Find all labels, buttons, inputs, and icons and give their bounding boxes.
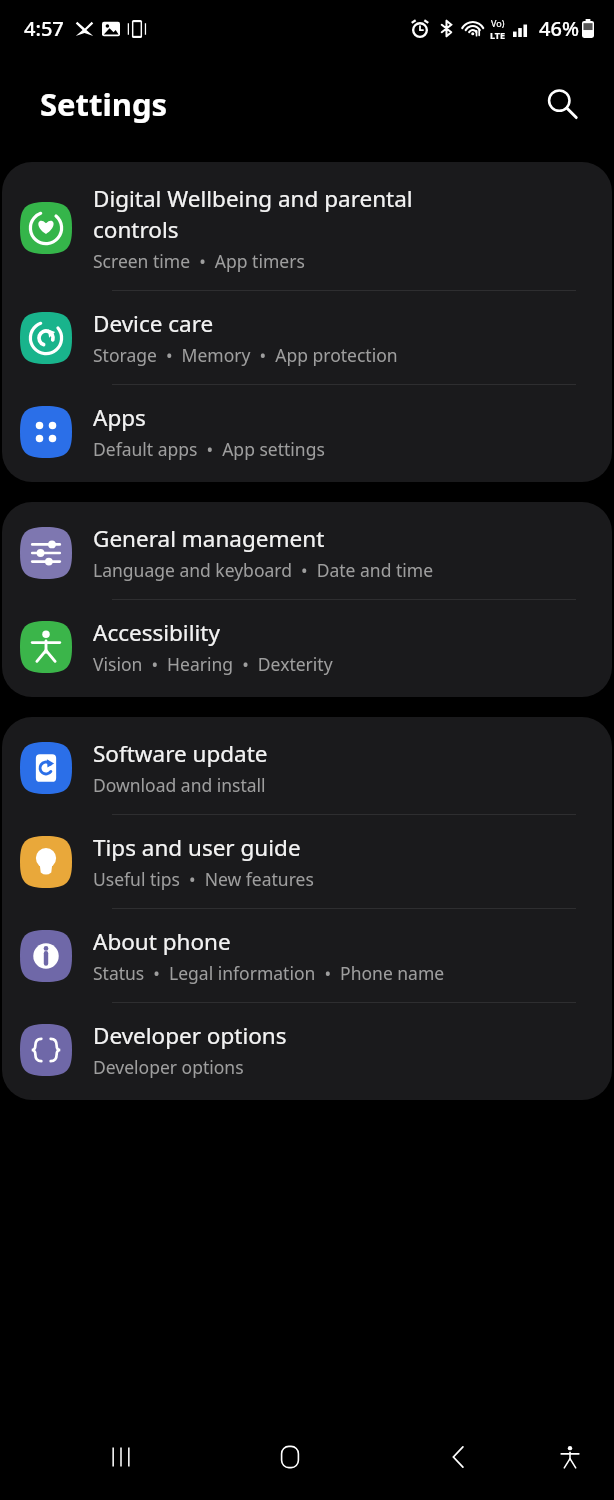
staticText: Default apps • App settings: [93, 437, 325, 461]
staticText: Language and keyboard • Date and time: [93, 558, 434, 582]
button[interactable]: About phone: [2, 909, 612, 1002]
staticText: Apps: [93, 402, 146, 433]
button[interactable]: Search: [536, 78, 588, 130]
button[interactable]: Developer options: [2, 1003, 612, 1096]
staticText: Storage • Memory • App protection: [93, 343, 398, 367]
staticText: Tips and user guide: [93, 832, 301, 863]
staticText: Digital Wellbeing and parental controls: [93, 183, 413, 245]
button[interactable]: Digital Wellbeing and parental controls: [2, 166, 612, 290]
staticText: Developer options: [93, 1055, 244, 1079]
button[interactable]: Home: [255, 1422, 325, 1492]
staticText: Useful tips • New features: [93, 867, 314, 891]
button[interactable]: Device care: [2, 291, 612, 384]
staticText: About phone: [93, 926, 231, 957]
staticText: Developer options: [93, 1020, 287, 1051]
staticText: Software update: [93, 738, 268, 769]
staticText: Vision • Hearing • Dexterity: [93, 652, 333, 676]
staticText: Screen time • App timers: [93, 249, 305, 273]
button[interactable]: General management: [2, 506, 612, 599]
staticText: 4:57: [24, 15, 64, 42]
staticText: Vo): [491, 17, 505, 29]
staticText: Download and install: [93, 773, 266, 797]
button[interactable]: Apps: [2, 385, 612, 478]
staticText: Device care: [93, 308, 214, 339]
staticText: Status • Legal information • Phone name: [93, 961, 445, 985]
staticText: LTE: [490, 29, 506, 41]
button[interactable]: Accessibility: [2, 600, 612, 693]
staticText: Settings: [40, 83, 168, 125]
staticText: 46%: [539, 15, 579, 42]
button[interactable]: Software update: [2, 721, 612, 814]
button[interactable]: Back: [424, 1422, 494, 1492]
button[interactable]: Tips and user guide: [2, 815, 612, 908]
button[interactable]: Accessibility shortcut: [540, 1427, 600, 1487]
button[interactable]: Recent apps: [86, 1422, 156, 1492]
staticText: Accessibility: [93, 617, 220, 648]
staticText: General management: [93, 523, 325, 554]
